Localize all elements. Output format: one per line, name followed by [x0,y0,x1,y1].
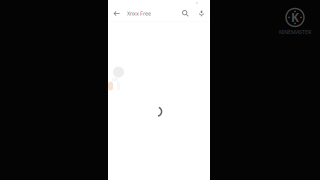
button[interactable]: Back [110,7,123,20]
button[interactable]: Search [180,7,191,20]
staticText: KINEMASTER [279,28,311,36]
button[interactable]: Voice search [196,7,207,20]
staticText: K [291,9,299,25]
staticText: Xnxx Free [127,10,151,17]
